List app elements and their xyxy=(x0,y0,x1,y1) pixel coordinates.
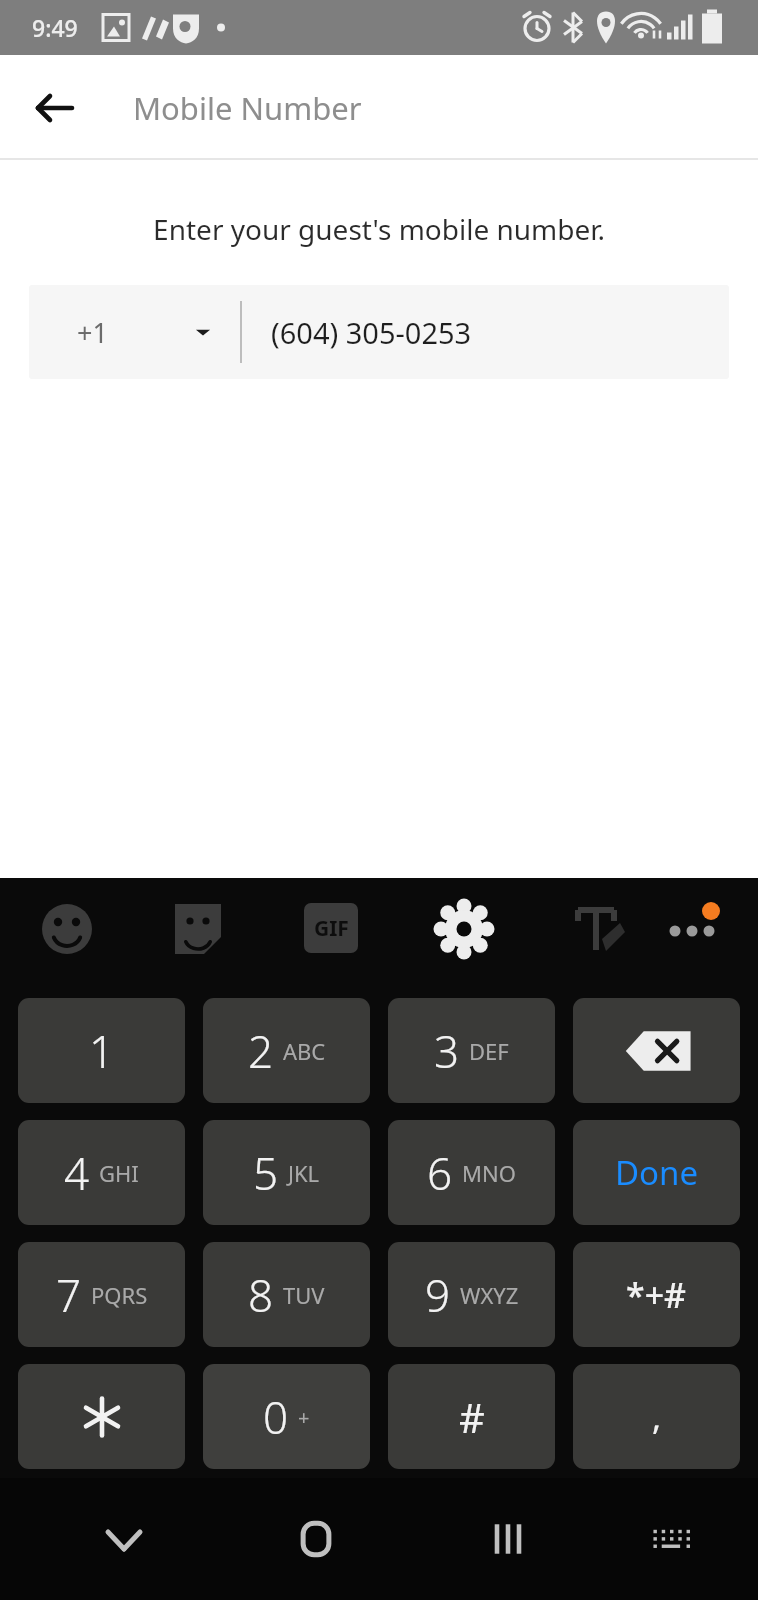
staticText: PQRS xyxy=(91,1280,148,1310)
staticText: WXYZ xyxy=(460,1280,519,1310)
button[interactable]: Change keyboard xyxy=(624,1493,716,1585)
button[interactable]: GIF xyxy=(304,903,358,953)
staticText: +1 xyxy=(77,314,108,351)
staticText: *+# xyxy=(626,1272,687,1318)
staticText: JKL xyxy=(288,1158,320,1188)
button[interactable]: 2 xyxy=(203,998,370,1103)
button[interactable]: Back xyxy=(22,75,88,141)
staticText: 1 xyxy=(89,1021,115,1081)
button[interactable]: Home xyxy=(270,1493,362,1585)
button[interactable]: 9 xyxy=(388,1242,555,1347)
staticText: 5 xyxy=(253,1143,279,1203)
button[interactable]: *+# xyxy=(573,1242,740,1347)
staticText: 0 xyxy=(263,1387,289,1447)
button[interactable]: +1 xyxy=(29,285,240,379)
button[interactable]: 8 xyxy=(203,1242,370,1347)
other: Settings xyxy=(0,878,758,978)
button[interactable]: 4 xyxy=(18,1120,185,1225)
staticText: GHI xyxy=(99,1158,139,1188)
staticText: + xyxy=(298,1404,310,1431)
button[interactable]: Done xyxy=(573,1120,740,1225)
staticText: 2 xyxy=(248,1021,274,1081)
button[interactable]: 7 xyxy=(18,1242,185,1347)
staticText: 7 xyxy=(56,1265,82,1325)
button[interactable]: # xyxy=(388,1364,555,1469)
staticText: # xyxy=(459,1390,485,1444)
button[interactable] xyxy=(18,1364,185,1469)
button[interactable]: 5 xyxy=(203,1120,370,1225)
staticText: GIF xyxy=(314,914,349,943)
button[interactable]: Recents xyxy=(462,1493,554,1585)
button[interactable]: 1 xyxy=(18,998,185,1103)
button[interactable]: , xyxy=(573,1364,740,1469)
staticText: Enter your guest's mobile number. xyxy=(0,210,758,248)
staticText: DEF xyxy=(469,1036,509,1066)
button[interactable]: Hide keyboard xyxy=(78,1493,170,1585)
button[interactable]: (604) 305-0253 xyxy=(242,285,729,379)
button[interactable]: 6 xyxy=(388,1120,555,1225)
staticText: Done xyxy=(615,1150,699,1195)
staticText: ABC xyxy=(283,1036,326,1066)
staticText: 4 xyxy=(64,1143,90,1203)
staticText: , xyxy=(652,1394,662,1440)
button[interactable]: 0 xyxy=(203,1364,370,1469)
staticText: 8 xyxy=(248,1265,274,1325)
staticText: (604) 305-0253 xyxy=(271,313,472,352)
staticText: 6 xyxy=(427,1143,453,1203)
staticText: Mobile Number xyxy=(133,87,362,129)
staticText: 9:49 xyxy=(32,12,78,43)
staticText: TUV xyxy=(283,1280,325,1310)
button[interactable]: Backspace xyxy=(573,998,740,1103)
staticText: 3 xyxy=(434,1021,460,1081)
other: More options xyxy=(0,878,758,978)
button[interactable]: 3 xyxy=(388,998,555,1103)
staticText: 9 xyxy=(425,1265,451,1325)
staticText: MNO xyxy=(462,1158,516,1188)
